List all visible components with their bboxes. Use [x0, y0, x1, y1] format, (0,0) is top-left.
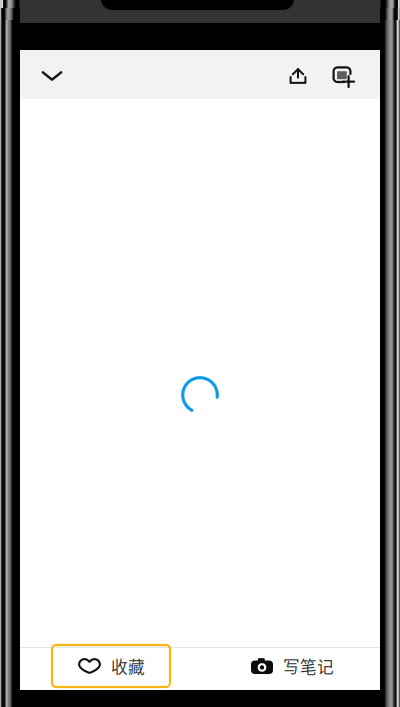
staticText: 收藏	[111, 654, 145, 678]
button[interactable]: Collapse	[30, 54, 74, 98]
button[interactable]: New tab	[322, 54, 366, 98]
button[interactable]: 写笔记	[251, 645, 334, 687]
staticText: 写笔记	[283, 654, 334, 678]
button[interactable]: Share	[276, 54, 320, 98]
button[interactable]: 收藏	[52, 645, 170, 687]
